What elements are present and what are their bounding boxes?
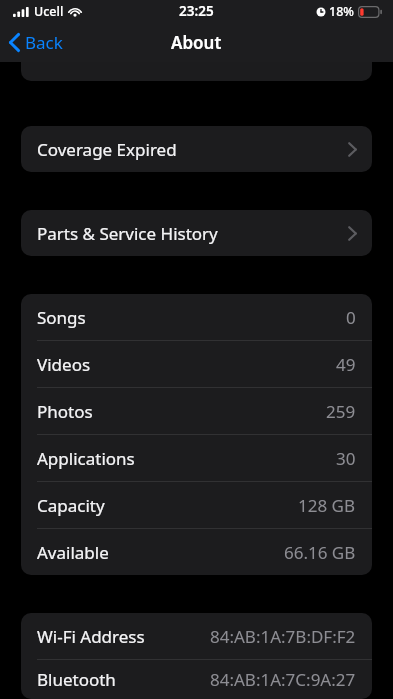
- staticText: 30: [336, 447, 356, 470]
- staticText: Parts & Service History: [37, 222, 218, 245]
- staticText: 49: [336, 353, 356, 376]
- staticText: 18%: [329, 3, 354, 20]
- staticText: 0: [346, 306, 356, 329]
- staticText: Ucell: [34, 3, 64, 20]
- button[interactable]: Serial Number: [21, 40, 372, 81]
- button[interactable]: Back: [0, 26, 75, 59]
- button[interactable]: Videos: [21, 341, 372, 387]
- staticText: Bluetooth: [37, 668, 116, 691]
- staticText: Wi-Fi Address: [37, 625, 145, 648]
- button[interactable]: Photos: [21, 388, 372, 434]
- staticText: Coverage Expired: [37, 138, 177, 161]
- staticText: Videos: [37, 353, 91, 376]
- staticText: Serial Number: [37, 43, 153, 66]
- staticText: Applications: [37, 447, 135, 470]
- button[interactable]: Parts & Service History: [21, 210, 372, 256]
- staticText: 23:25: [179, 2, 214, 20]
- button[interactable]: Coverage Expired: [21, 126, 372, 172]
- staticText: 66.16 GB: [284, 541, 356, 564]
- button[interactable]: Applications: [21, 435, 372, 481]
- button[interactable]: Capacity: [21, 482, 372, 528]
- staticText: 259: [326, 400, 356, 423]
- staticText: Songs: [37, 306, 86, 329]
- staticText: Available: [37, 541, 109, 564]
- staticText: Capacity: [37, 494, 105, 517]
- button[interactable]: Wi-Fi Address: [21, 613, 372, 659]
- staticText: 84:AB:1A:7B:DF:F2: [210, 625, 356, 648]
- button[interactable]: Available: [21, 529, 372, 575]
- staticText: Photos: [37, 400, 93, 423]
- staticText: 128 GB: [298, 494, 356, 517]
- button[interactable]: Bluetooth: [21, 660, 372, 699]
- staticText: About: [171, 31, 222, 54]
- staticText: Back: [25, 31, 63, 54]
- staticText: 84:AB:1A:7C:9A:27: [210, 668, 356, 691]
- button[interactable]: Songs: [21, 294, 372, 340]
